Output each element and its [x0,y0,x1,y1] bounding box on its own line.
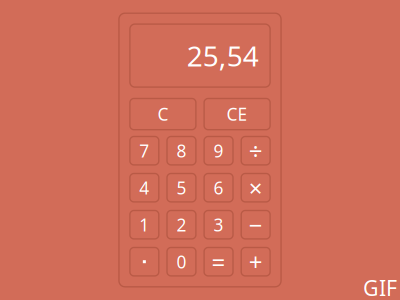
button[interactable]: 0 [166,247,197,277]
staticText: + [249,246,263,278]
staticText: ÷ [249,135,263,167]
staticText: C [157,103,168,126]
staticText: 7 [139,139,149,162]
staticText: − [249,209,263,241]
button[interactable]: Multiply [240,173,271,203]
staticText: CE [227,103,248,126]
button[interactable]: 5 [166,173,197,203]
button[interactable]: 3 [203,210,234,240]
staticText: = [212,246,226,278]
button[interactable]: Clear [129,98,197,130]
button[interactable]: Subtract [240,210,271,240]
staticText: GIF [363,274,397,300]
staticText: 25,54 [187,37,259,74]
button[interactable]: 7 [129,136,159,166]
button[interactable]: 1 [129,210,159,240]
staticText: 0 [176,250,186,273]
staticText: 1 [139,213,149,236]
button[interactable]: 2 [166,210,197,240]
staticText: 4 [139,176,149,199]
button[interactable]: Add [240,247,271,277]
button[interactable]: 6 [203,173,234,203]
staticText: 6 [214,176,224,199]
button[interactable]: Clear entry [203,98,271,130]
staticText: 5 [176,176,186,199]
button[interactable]: Equals [203,247,234,277]
button[interactable]: 9 [203,136,234,166]
staticText: 8 [176,139,186,162]
button[interactable]: 8 [166,136,197,166]
staticText: 9 [214,139,224,162]
button[interactable]: 4 [129,173,159,203]
button[interactable]: Divide [240,136,271,166]
staticText: 2 [176,213,186,236]
staticText: × [249,172,263,204]
button[interactable]: Decimal point [129,247,159,277]
staticText: 3 [214,213,224,236]
